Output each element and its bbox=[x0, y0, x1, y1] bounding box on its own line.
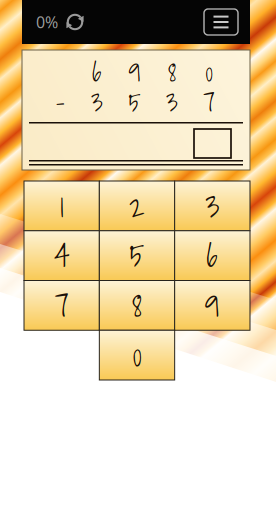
button[interactable]: 7 bbox=[24, 280, 99, 330]
staticText: 8 bbox=[132, 281, 142, 330]
button[interactable]: 6 bbox=[175, 231, 250, 281]
staticText: 3 bbox=[91, 82, 103, 122]
staticText: 9 bbox=[205, 281, 220, 330]
staticText: 6 bbox=[92, 52, 102, 92]
staticText: 6 bbox=[206, 231, 218, 280]
staticText: 9 bbox=[128, 52, 140, 92]
button[interactable]: 2 bbox=[99, 181, 175, 231]
staticText: 8 bbox=[168, 52, 176, 92]
button[interactable]: 9 bbox=[175, 280, 250, 330]
button[interactable]: Restart bbox=[58, 5, 92, 39]
button[interactable]: 0 bbox=[99, 330, 175, 380]
button[interactable]: 4 bbox=[24, 231, 99, 281]
button[interactable]: 3 bbox=[175, 181, 250, 231]
button[interactable]: Answer bbox=[194, 129, 231, 158]
staticText: 0 bbox=[205, 52, 213, 92]
staticText: 7 bbox=[203, 82, 215, 122]
button[interactable]: 8 bbox=[99, 280, 175, 330]
staticText: − bbox=[55, 82, 64, 122]
staticText: 5 bbox=[128, 82, 140, 122]
staticText: 4 bbox=[54, 231, 69, 280]
staticText: 5 bbox=[129, 231, 144, 280]
staticText: 0 bbox=[132, 330, 141, 380]
staticText: 0% bbox=[36, 11, 58, 33]
staticText: 7 bbox=[55, 281, 69, 330]
staticText: 3 bbox=[205, 181, 219, 230]
button[interactable]: Menu bbox=[204, 9, 250, 35]
staticText: 2 bbox=[129, 181, 145, 230]
button[interactable]: 1 bbox=[24, 181, 99, 231]
button[interactable]: 5 bbox=[99, 231, 175, 281]
staticText: 1 bbox=[60, 181, 63, 230]
staticText: 3 bbox=[166, 82, 178, 122]
